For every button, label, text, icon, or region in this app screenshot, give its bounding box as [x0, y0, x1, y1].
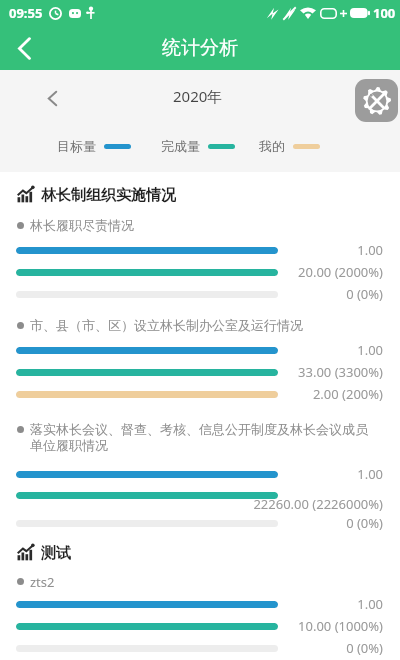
- staticText: 测试: [41, 544, 71, 561]
- staticText: 1.00: [357, 595, 383, 613]
- staticText: 0 (0%): [346, 514, 383, 532]
- staticText: 我的: [259, 138, 285, 154]
- button[interactable]: Previous year: [30, 76, 74, 120]
- staticText: 10.00 (1000%): [298, 617, 383, 635]
- staticText: 目标量: [57, 138, 96, 154]
- staticText: 0 (0%): [346, 639, 383, 657]
- staticText: 落实林长会议、督查、考核、信息公开制度及林长会议成员 单位履职情况: [30, 421, 368, 454]
- button[interactable]: 2020年: [150, 84, 245, 108]
- staticText: 完成量: [161, 138, 200, 154]
- staticText: 统计分析: [162, 36, 238, 60]
- button[interactable]: Back: [0, 26, 48, 70]
- staticText: 22260.00 (2226000%): [0, 495, 383, 513]
- button[interactable]: 完成量: [161, 138, 235, 154]
- staticText: 1.00: [357, 241, 383, 259]
- staticText: 林长制组织实施情况: [41, 186, 176, 203]
- staticText: 100: [373, 4, 396, 22]
- staticText: 09:55: [9, 4, 43, 22]
- staticText: 林长履职尽责情况: [30, 217, 134, 233]
- button[interactable]: 我的: [259, 138, 320, 154]
- staticText: 2.00 (200%): [312, 385, 383, 403]
- button[interactable]: 目标量: [57, 138, 131, 154]
- staticText: 33.00 (3300%): [298, 363, 383, 381]
- staticText: 20.00 (2000%): [298, 263, 383, 281]
- staticText: 1.00: [357, 465, 383, 483]
- staticText: 0 (0%): [346, 285, 383, 303]
- staticText: zts2: [30, 573, 55, 591]
- button[interactable]: Settings: [355, 79, 398, 122]
- staticText: 1.00: [357, 341, 383, 359]
- staticText: 市、县（市、区）设立林长制办公室及运行情况: [30, 317, 303, 333]
- staticText: 2020年: [173, 86, 223, 106]
